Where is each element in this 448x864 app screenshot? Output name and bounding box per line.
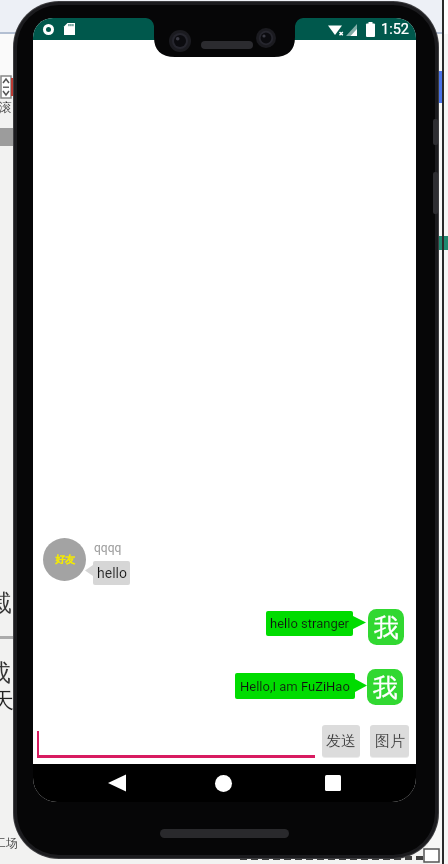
button[interactable]: 图片 xyxy=(370,725,409,757)
staticText: 工场 xyxy=(0,835,18,850)
staticText: 成 xyxy=(0,658,11,688)
staticText: 戚 xyxy=(0,588,12,618)
staticText: 发送 xyxy=(326,732,356,751)
button[interactable]: 发送 xyxy=(322,725,360,757)
button[interactable] xyxy=(37,723,315,758)
staticText: 好友 xyxy=(55,553,75,566)
button[interactable] xyxy=(206,766,240,800)
staticText: 天 xyxy=(0,687,14,715)
staticText: 动滚 xyxy=(0,99,12,115)
staticText: 图片 xyxy=(375,732,405,751)
button[interactable] xyxy=(316,766,350,800)
staticText: Hello,I am FuZiHao xyxy=(240,679,350,694)
staticText: 我 xyxy=(373,672,398,703)
staticText: 1:52 xyxy=(381,21,409,38)
button[interactable] xyxy=(100,766,134,800)
staticText: 我 xyxy=(374,612,399,643)
staticText: hello xyxy=(97,565,127,581)
staticText: hello stranger xyxy=(270,616,349,631)
staticText: qqqq xyxy=(94,541,122,555)
